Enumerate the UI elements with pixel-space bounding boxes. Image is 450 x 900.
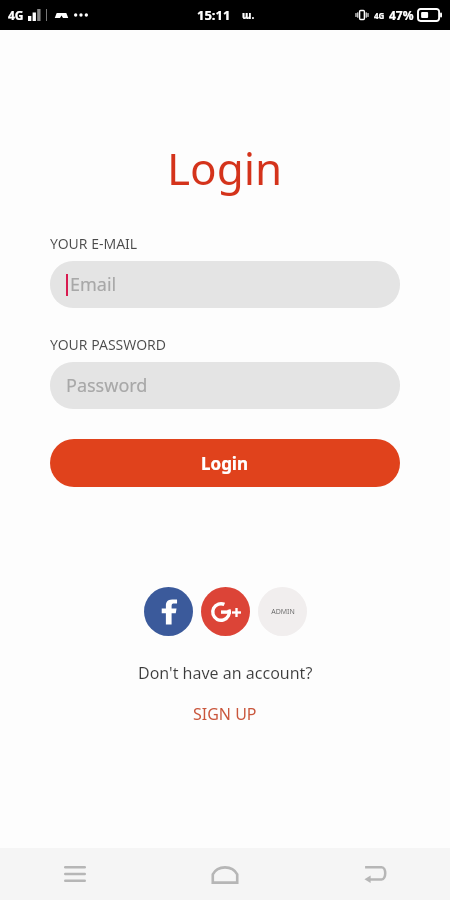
staticText: ADMIN	[271, 607, 295, 617]
button[interactable]: Email	[50, 261, 400, 308]
staticText: Login	[167, 138, 283, 198]
staticText: 4G	[374, 10, 385, 21]
staticText: ա.	[242, 8, 255, 22]
staticText: Don't have an account?	[138, 662, 313, 684]
staticText: Login	[201, 452, 249, 475]
button[interactable]: Back	[300, 848, 450, 900]
staticText: Email	[70, 272, 117, 297]
button[interactable]: ADMIN	[258, 587, 307, 636]
button[interactable]: Password	[50, 362, 400, 409]
staticText: 4G	[8, 7, 24, 23]
staticText: 47%	[389, 7, 414, 23]
staticText: 15:11	[197, 6, 231, 24]
button[interactable]: Home	[150, 848, 300, 900]
button[interactable]: SIGN UP	[183, 700, 267, 728]
button[interactable]: Sign in with Google Plus	[201, 587, 250, 636]
button[interactable]: Sign in with Facebook	[144, 587, 193, 636]
button[interactable]: Login	[50, 439, 400, 487]
staticText: YOUR E-MAIL	[50, 234, 138, 253]
staticText: Password	[66, 373, 148, 398]
button[interactable]: Recent apps	[0, 848, 150, 900]
staticText: SIGN UP	[193, 703, 257, 725]
staticText: YOUR PASSWORD	[50, 335, 166, 354]
